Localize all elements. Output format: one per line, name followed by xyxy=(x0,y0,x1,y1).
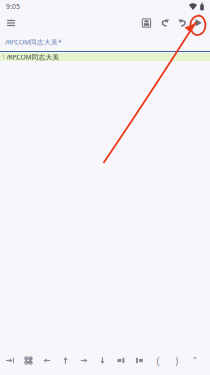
button[interactable]: Down xyxy=(93,351,112,369)
button[interactable]: Left xyxy=(38,351,56,369)
button[interactable]: Outdent xyxy=(130,351,149,369)
staticText: ) xyxy=(175,353,178,368)
staticText: /RP.COM同志大美* xyxy=(5,38,62,46)
button[interactable]: Tab xyxy=(1,351,19,369)
button[interactable]: Command xyxy=(19,351,38,369)
staticText: ( xyxy=(156,353,159,368)
button[interactable]: ) xyxy=(167,351,186,369)
staticText: /RP.COM同志大美 xyxy=(6,53,59,61)
button[interactable]: Up xyxy=(56,351,75,369)
button[interactable]: Right xyxy=(75,351,93,369)
button[interactable]: Menu xyxy=(0,13,22,32)
staticText: 1 xyxy=(2,53,5,61)
button[interactable]: Indent xyxy=(112,351,130,369)
button[interactable]: ( xyxy=(149,351,167,369)
button[interactable]: Save xyxy=(137,13,156,32)
staticText: 9:05 xyxy=(6,2,20,11)
button[interactable]: Undo xyxy=(156,13,174,32)
staticText: " xyxy=(193,354,197,367)
button[interactable]: Redo xyxy=(174,13,191,32)
button[interactable]: " xyxy=(186,351,204,369)
button[interactable]: Run xyxy=(191,13,205,32)
